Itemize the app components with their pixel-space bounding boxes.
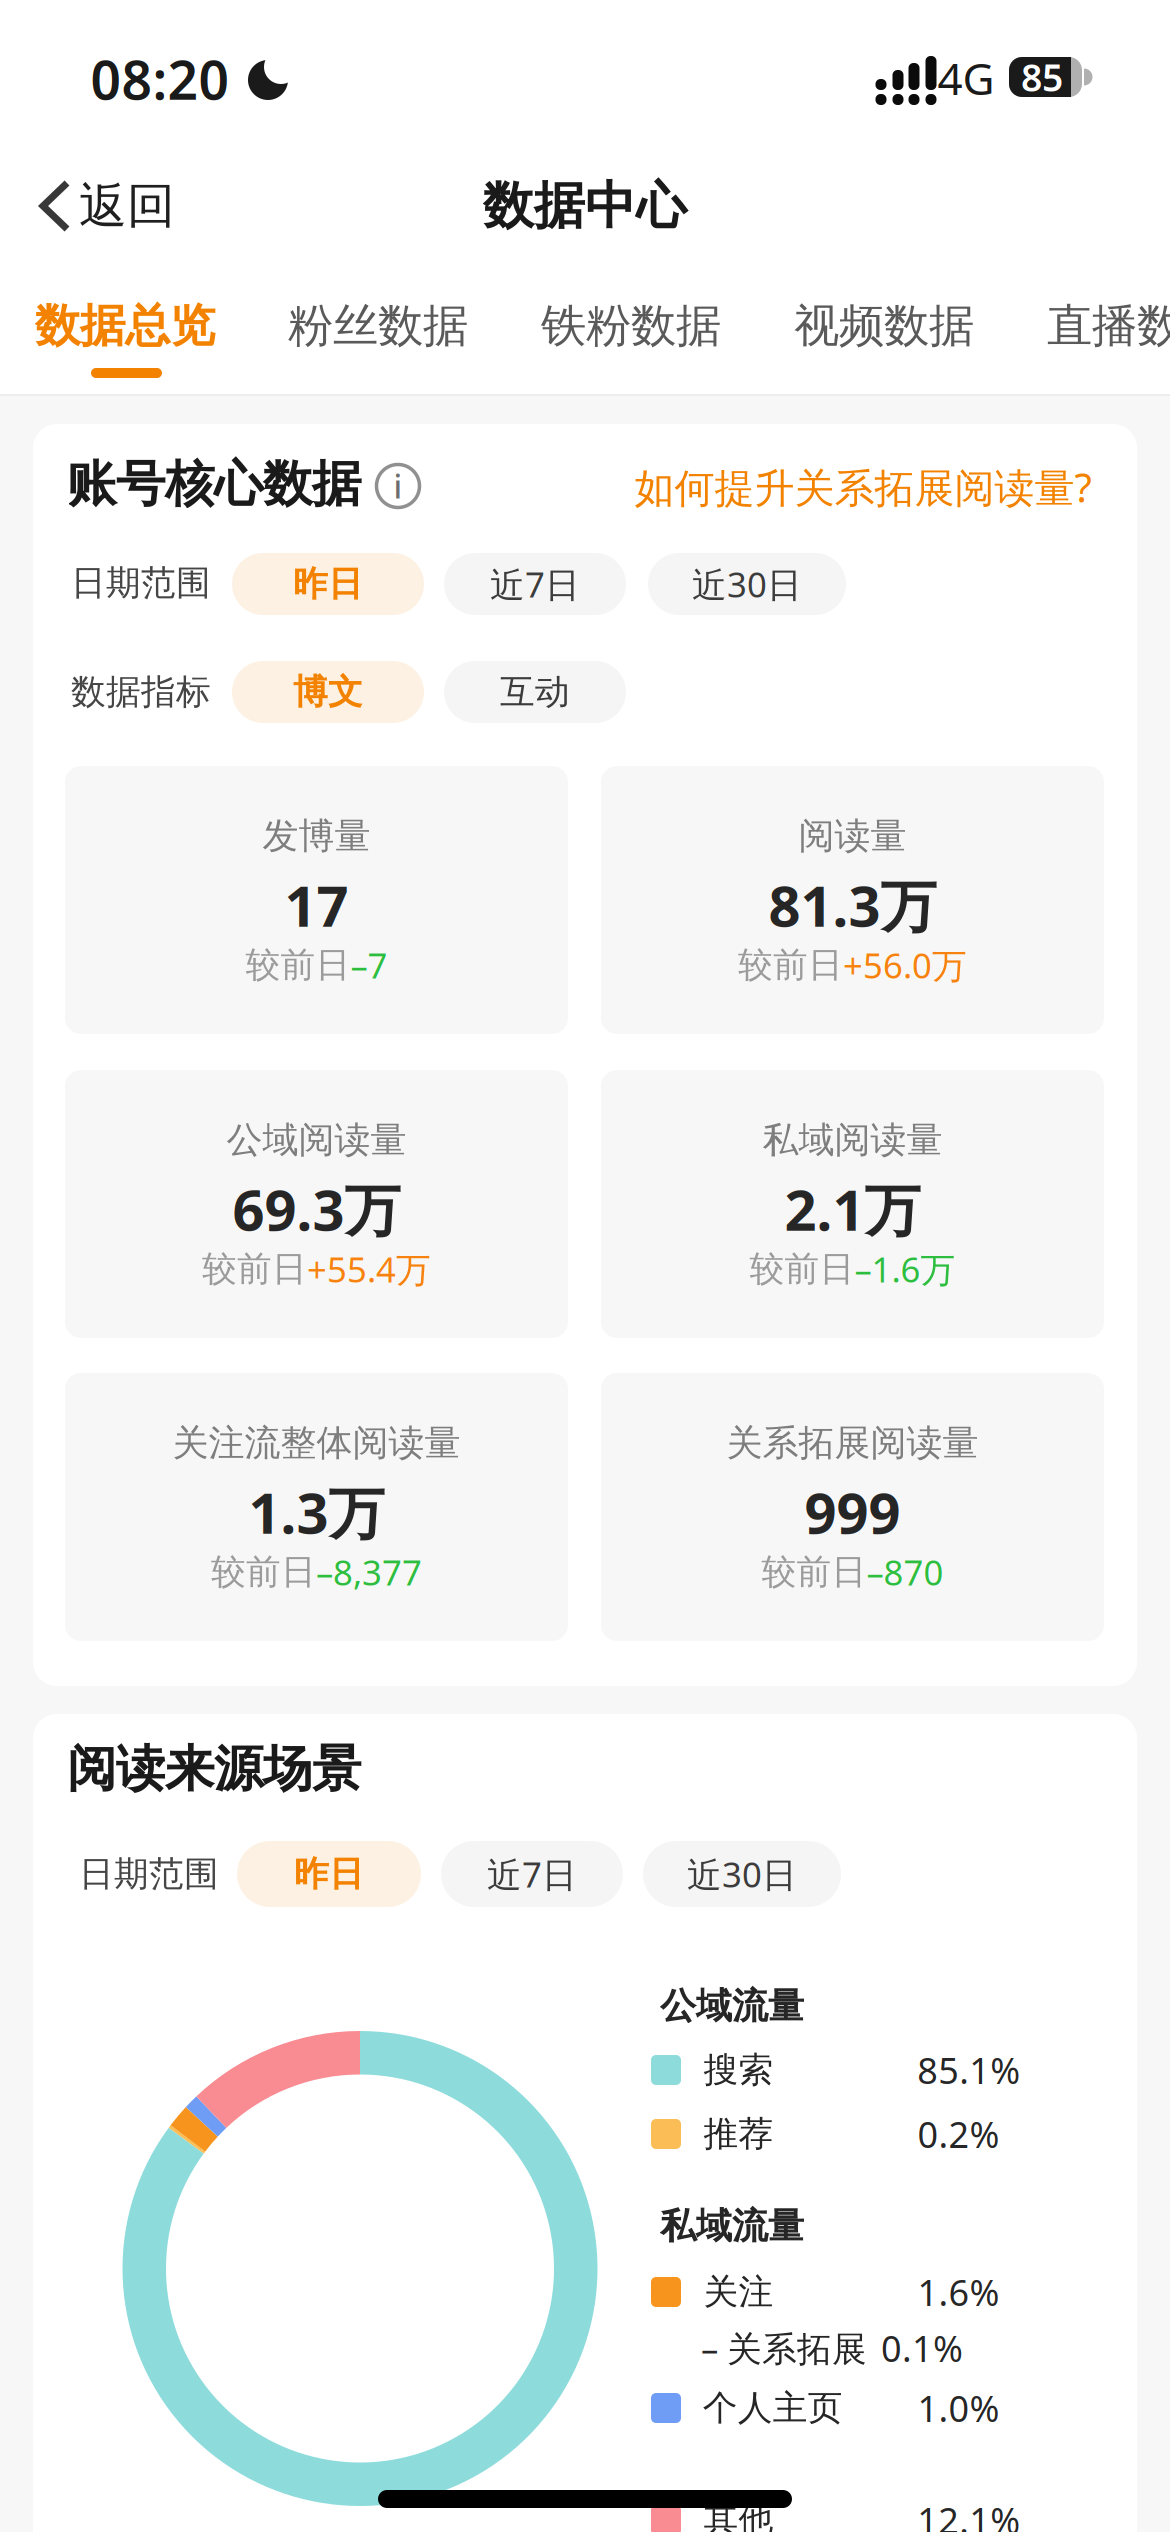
staticText: 1.3万: [248, 1475, 384, 1549]
button[interactable]: 返回: [39, 175, 175, 237]
staticText: 0.1%: [881, 2324, 963, 2372]
button[interactable]: 直播数据: [1047, 281, 1170, 371]
staticText: 个人主页: [703, 2387, 843, 2429]
staticText: –1.6万: [854, 1246, 955, 1292]
staticText: 关注流整体阅读量: [172, 1421, 460, 1465]
staticText: 4G: [937, 49, 994, 107]
staticText: 粉丝数据: [288, 298, 468, 354]
staticText: 81.3万: [768, 868, 936, 942]
button[interactable]: 昨日: [232, 553, 424, 615]
staticText: 较前日: [245, 944, 350, 986]
staticText: 12.1%: [917, 2496, 1020, 2532]
button[interactable]: 近30日: [648, 553, 846, 615]
staticText: 较前日: [738, 944, 843, 986]
staticText: 其他: [703, 2499, 773, 2532]
staticText: 近30日: [692, 561, 802, 607]
staticText: 阅读来源场景: [67, 1739, 361, 1799]
staticText: 较前日: [749, 1248, 854, 1290]
staticText: 85.1%: [917, 2046, 1020, 2094]
button[interactable]: 铁粉数据: [541, 281, 721, 371]
button[interactable]: 昨日: [237, 1841, 421, 1907]
button[interactable]: 粉丝数据: [288, 281, 468, 371]
staticText: 铁粉数据: [541, 298, 721, 354]
staticText: 较前日: [202, 1248, 307, 1290]
staticText: 公域阅读量: [226, 1118, 406, 1162]
staticText: 账号核心数据: [67, 454, 361, 514]
staticText: – 关系拓展: [701, 2325, 867, 2371]
staticText: 如何提升关系拓展阅读量?: [634, 460, 1091, 513]
staticText: 数据总览: [35, 298, 215, 354]
staticText: i: [393, 465, 402, 507]
button[interactable]: 近7日: [441, 1841, 623, 1907]
staticText: 近7日: [490, 561, 580, 607]
staticText: –870: [866, 1549, 943, 1595]
staticText: 关注: [703, 2271, 773, 2313]
staticText: 返回: [79, 176, 175, 235]
staticText: 数据指标: [71, 671, 211, 713]
staticText: 关系拓展阅读量: [726, 1421, 978, 1465]
staticText: 昨日: [294, 1853, 364, 1895]
button[interactable]: 近7日: [444, 553, 626, 615]
staticText: 1.6%: [918, 2268, 1000, 2316]
staticText: 直播数据: [1047, 298, 1170, 354]
staticText: 私域阅读量: [762, 1118, 942, 1162]
staticText: 17: [284, 868, 348, 942]
staticText: 近30日: [687, 1851, 797, 1897]
button[interactable]: 互动: [444, 661, 626, 723]
staticText: 2.1万: [784, 1172, 920, 1246]
staticText: 博文: [293, 671, 363, 713]
staticText: +56.0万: [843, 942, 967, 988]
button[interactable]: 数据总览: [35, 281, 215, 371]
staticText: 视频数据: [794, 298, 974, 354]
staticText: 08:20: [90, 44, 229, 114]
staticText: 昨日: [293, 563, 363, 605]
staticText: 较前日: [211, 1551, 316, 1593]
staticText: 999: [804, 1475, 900, 1549]
staticText: 搜索: [703, 2049, 773, 2091]
staticText: 日期范围: [71, 562, 211, 604]
staticText: 日期范围: [79, 1853, 219, 1895]
button[interactable]: i: [376, 464, 420, 508]
staticText: 公域流量: [660, 1984, 804, 2028]
staticText: –8,377: [316, 1549, 422, 1595]
button[interactable]: 博文: [232, 661, 424, 723]
staticText: 私域流量: [660, 2204, 804, 2248]
staticText: 69.3万: [232, 1172, 400, 1246]
staticText: 数据中心: [483, 175, 687, 237]
button[interactable]: 如何提升关系拓展阅读量?: [634, 460, 1091, 513]
staticText: 互动: [500, 671, 570, 713]
staticText: 0.2%: [918, 2110, 1000, 2158]
staticText: –7: [350, 942, 387, 988]
staticText: 发博量: [262, 814, 370, 858]
staticText: 阅读量: [798, 814, 906, 858]
button[interactable]: 视频数据: [794, 281, 974, 371]
staticText: 较前日: [761, 1551, 866, 1593]
button[interactable]: 近30日: [643, 1841, 841, 1907]
staticText: 85: [1021, 52, 1063, 102]
staticText: 近7日: [487, 1851, 577, 1897]
staticText: 推荐: [703, 2113, 773, 2155]
staticText: +55.4万: [307, 1246, 431, 1292]
staticText: 1.0%: [918, 2384, 1000, 2432]
